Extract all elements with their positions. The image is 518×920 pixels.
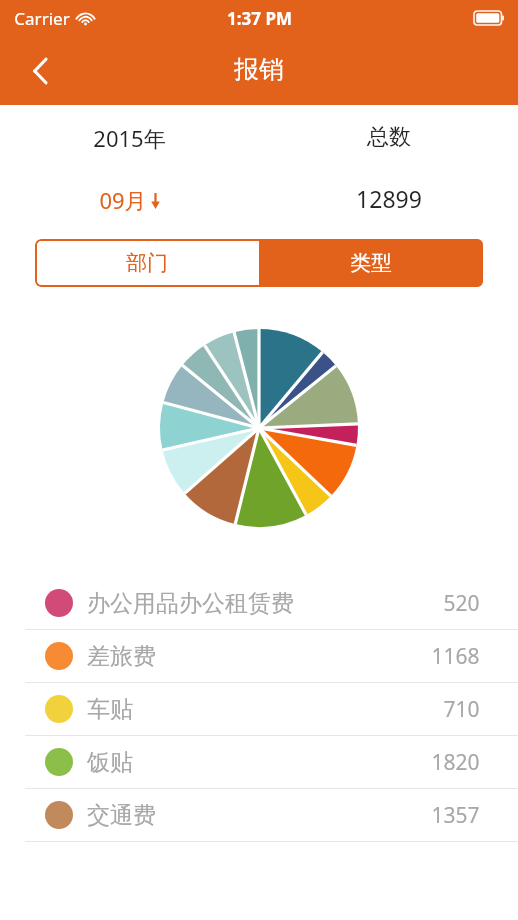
- staticText: 2015年: [93, 123, 166, 153]
- button[interactable]: 差旅费: [0, 630, 518, 682]
- button[interactable]: 饭贴: [0, 736, 518, 788]
- button[interactable]: 车贴: [0, 683, 518, 735]
- staticText: Carrier: [14, 7, 70, 30]
- button[interactable]: Back: [16, 47, 64, 95]
- staticText: 报销: [234, 54, 284, 85]
- staticText: 09月: [99, 185, 147, 215]
- staticText: 总数: [367, 123, 411, 151]
- staticText: 1:37 PM: [227, 7, 292, 30]
- staticText: 1357: [431, 801, 480, 830]
- button[interactable]: 交通费: [0, 789, 518, 841]
- staticText: 部门: [126, 250, 168, 276]
- staticText: 1820: [431, 748, 480, 777]
- staticText: 520: [443, 589, 480, 618]
- staticText: 车贴: [87, 695, 133, 724]
- staticText: 1168: [431, 642, 480, 671]
- staticText: 类型: [350, 250, 392, 276]
- button[interactable]: 类型: [259, 239, 483, 287]
- staticText: 710: [443, 695, 480, 724]
- staticText: 12899: [356, 183, 422, 214]
- staticText: 办公用品办公租赁费: [87, 589, 294, 618]
- staticText: 交通费: [87, 801, 156, 830]
- button[interactable]: 办公用品办公租赁费: [0, 577, 518, 629]
- button[interactable]: 部门: [35, 239, 259, 287]
- staticText: 差旅费: [87, 642, 156, 671]
- staticText: 饭贴: [87, 748, 133, 777]
- button[interactable]: 09月: [93, 183, 167, 217]
